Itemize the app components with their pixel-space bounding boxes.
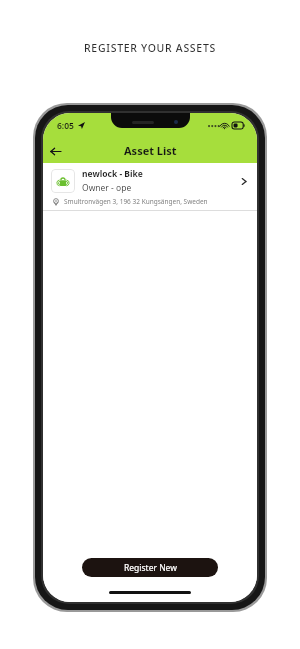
staticText: Smultronvägen 3, 196 32 Kungsängen, Swed… (64, 197, 208, 206)
staticText: Register New (124, 562, 177, 574)
button[interactable]: Back (43, 139, 67, 163)
button[interactable]: newlock - Bike (43, 165, 257, 211)
staticText: 6:05 (57, 120, 74, 132)
staticText: Owner - ope (82, 182, 132, 194)
staticText: REGISTER YOUR ASSETS (84, 41, 216, 55)
staticText: Asset List (124, 143, 177, 158)
staticText: newlock - Bike (82, 168, 143, 180)
button[interactable]: Register New (82, 558, 218, 577)
